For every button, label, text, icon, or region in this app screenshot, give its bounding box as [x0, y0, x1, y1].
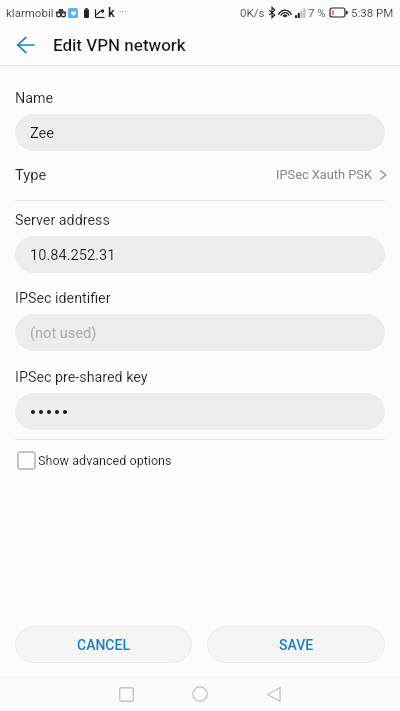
- staticText: Show advanced options: [38, 453, 172, 468]
- button[interactable]: Zee: [15, 114, 385, 151]
- button[interactable]: 10.84.252.31: [15, 236, 385, 273]
- button[interactable]: Home: [179, 677, 221, 711]
- staticText: klarmobil: [6, 6, 54, 19]
- staticText: Edit VPN network: [53, 35, 186, 55]
- staticText: CANCEL: [77, 637, 130, 653]
- button[interactable]: Type: [0, 166, 400, 201]
- staticText: 10.84.252.31: [30, 246, 116, 263]
- button[interactable]: Navigate up: [0, 24, 51, 66]
- staticText: ···: [119, 7, 127, 19]
- staticText: 0K/s: [240, 6, 265, 19]
- staticText: (not used): [30, 324, 97, 341]
- staticText: Server address: [15, 212, 110, 229]
- button[interactable]: SAVE: [207, 626, 385, 663]
- staticText: Type: [15, 166, 47, 183]
- staticText: IPSec Xauth PSK: [276, 167, 372, 182]
- staticText: IPSec identifier: [15, 290, 111, 307]
- button[interactable]: Recent apps: [105, 677, 147, 711]
- staticText: IPSec pre-shared key: [15, 369, 148, 386]
- staticText: 7 %: [308, 6, 326, 19]
- staticText: SAVE: [279, 637, 314, 653]
- button[interactable]: [15, 393, 385, 430]
- staticText: Zee: [30, 124, 55, 141]
- staticText: Name: [15, 90, 54, 107]
- button[interactable]: (not used): [15, 314, 385, 351]
- button[interactable]: Back: [253, 677, 295, 711]
- staticText: k: [108, 5, 115, 20]
- button[interactable]: CANCEL: [15, 626, 192, 663]
- button[interactable]: Show advanced options: [17, 451, 400, 470]
- staticText: 5:38 PM: [351, 6, 394, 19]
